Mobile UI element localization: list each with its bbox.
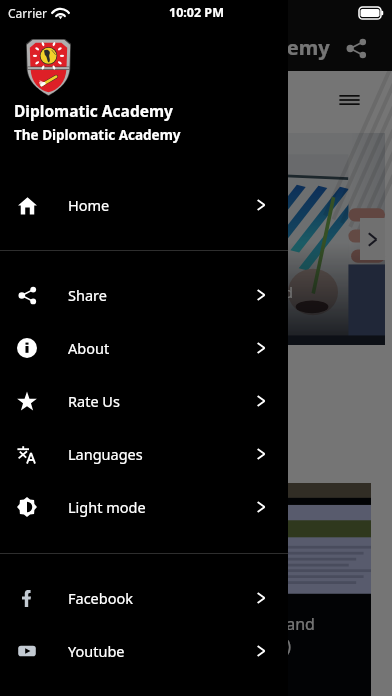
button[interactable]: Languages	[0, 427, 288, 480]
staticText: Facebook	[68, 588, 134, 608]
staticText: Diplomatic Academy and the world	[63, 283, 293, 302]
button[interactable]: Rate Us	[0, 374, 288, 427]
staticText: 10:02 PM	[169, 4, 224, 21]
button[interactable]: Share	[343, 35, 369, 61]
staticText: Academy	[238, 34, 330, 61]
staticText: Diplomatic Academy and Institute (Establ…	[128, 613, 315, 657]
staticText: Light mode	[68, 497, 146, 517]
staticText: Home	[68, 195, 110, 215]
button[interactable]: Next image	[360, 218, 385, 260]
button[interactable]: Facebook	[0, 571, 288, 624]
button[interactable]: Share	[0, 268, 288, 321]
staticText: Diplomatic Academy	[14, 100, 173, 121]
staticText: Carrier	[8, 5, 48, 21]
staticText: About	[68, 338, 110, 358]
button[interactable]: Light mode	[0, 480, 288, 533]
staticText: Youtube	[68, 641, 125, 661]
staticText: Share	[68, 285, 107, 305]
staticText: Rate Us	[68, 391, 120, 411]
staticText: The Diplomatic Academy	[14, 126, 181, 144]
button[interactable]: Diplomatic Academy and Institute (Establ…	[0, 483, 371, 696]
button[interactable]: Menu	[334, 88, 364, 112]
button[interactable]: About	[0, 321, 288, 374]
staticText: Languages	[68, 444, 143, 464]
button[interactable]: Home	[0, 178, 288, 231]
button[interactable]: Youtube	[0, 624, 288, 677]
